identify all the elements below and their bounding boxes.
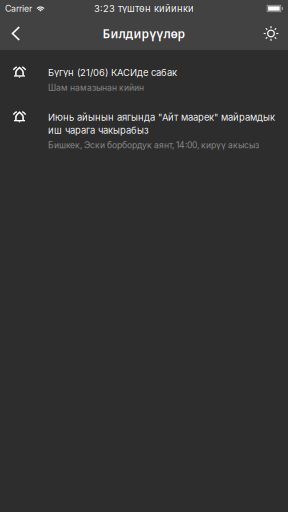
button[interactable]: Бүгүн (21/06) КАСИде сабак	[0, 50, 288, 104]
button[interactable]: Июнь айынын аягында "Айт маарек" майрамд…	[0, 104, 288, 161]
button[interactable]: Back	[0, 17, 32, 49]
staticText: Шам намазынан кийин	[48, 82, 144, 93]
button[interactable]: Brightness	[255, 17, 287, 49]
staticText: Билдирүүлөр	[102, 25, 185, 41]
staticText: 3:23 түштөн кийинки	[94, 3, 194, 14]
staticText: Бишкек, Эски борбордук аянт, 14:00, кирү…	[48, 140, 259, 150]
staticText: Июнь айынын аягында "Айт маарек" майрамд…	[48, 112, 275, 136]
staticText: Carrier	[5, 3, 32, 14]
staticText: Бүгүн (21/06) КАСИде сабак	[48, 67, 177, 78]
